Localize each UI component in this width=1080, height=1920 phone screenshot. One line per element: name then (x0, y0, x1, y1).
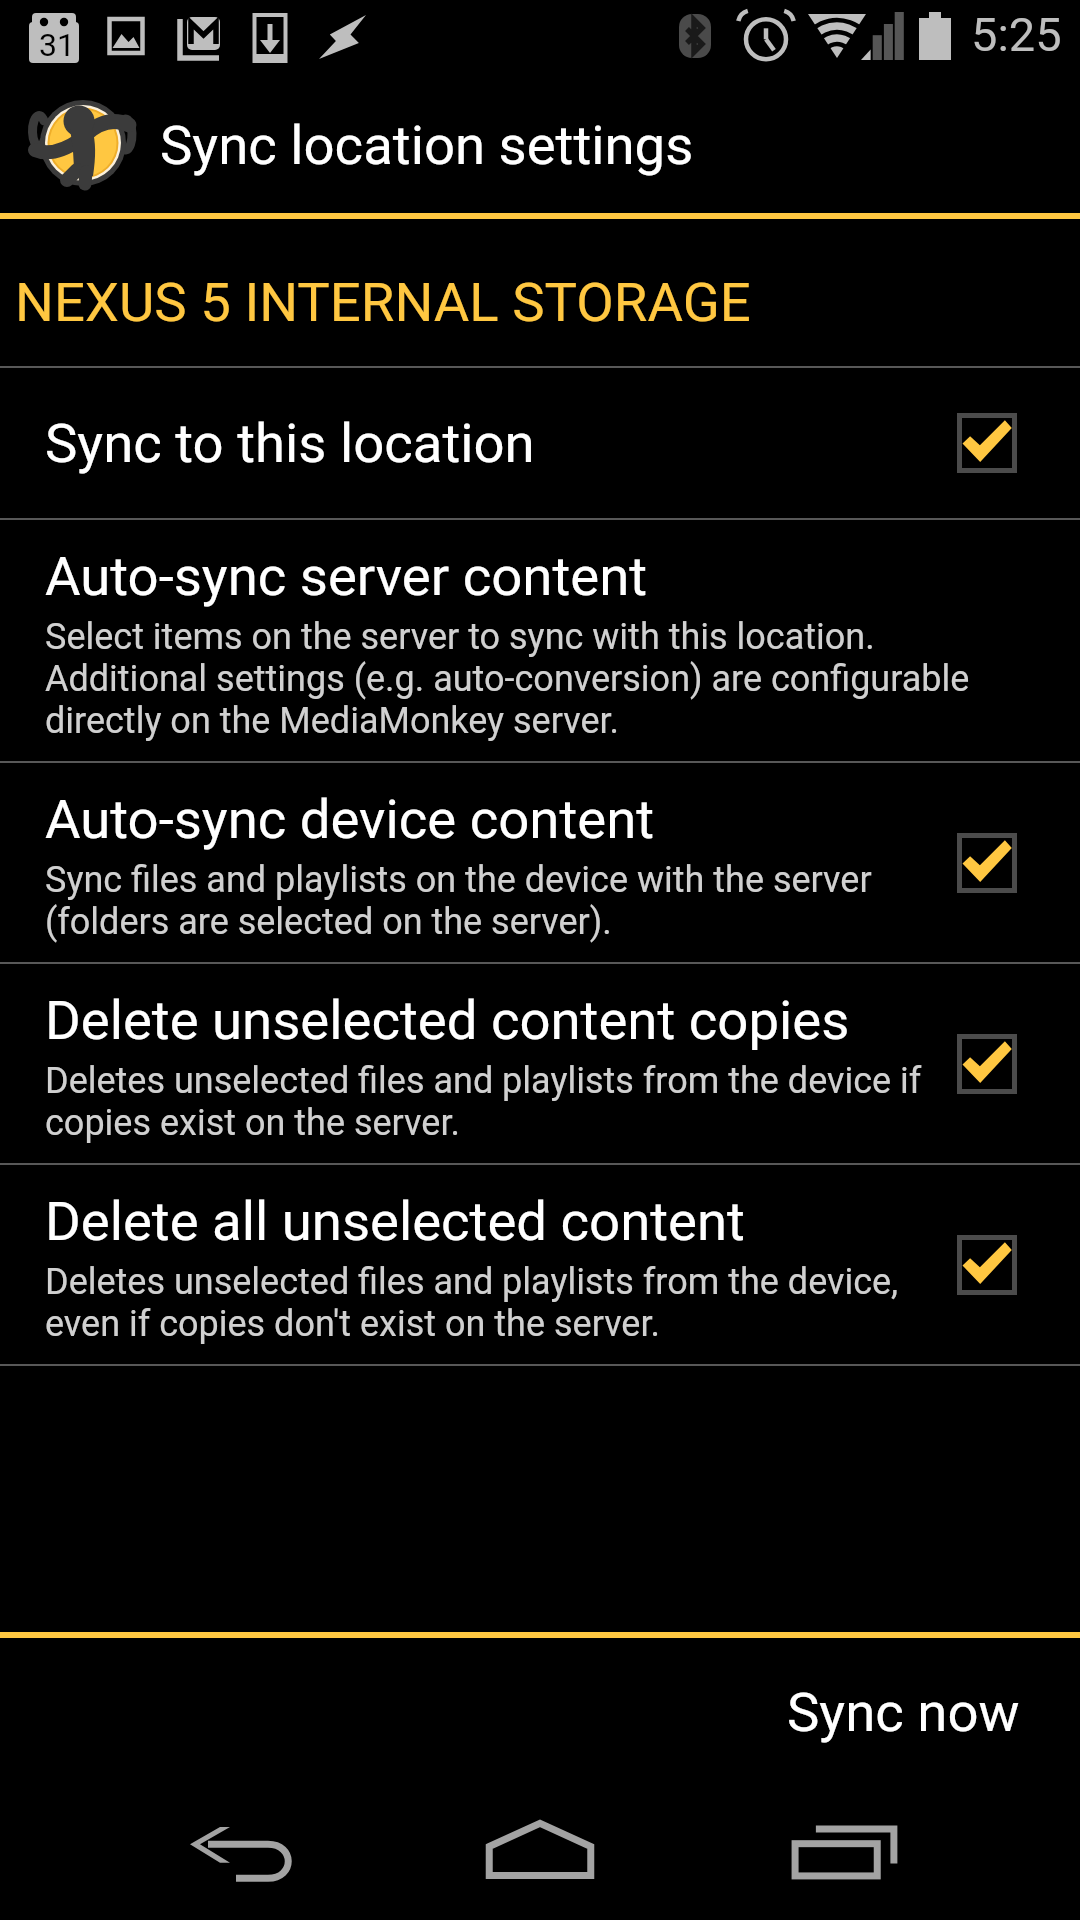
button[interactable]: Toggle Auto-sync device content (957, 833, 1017, 893)
staticText: NEXUS 5 INTERNAL STORAGE (15, 270, 751, 334)
staticText: Delete unselected content copies (45, 988, 850, 1052)
button[interactable]: Toggle Delete unselected content copies (957, 1034, 1017, 1094)
button[interactable]: Delete all unselected content (0, 1165, 1080, 1364)
staticText: 31 (39, 26, 75, 64)
staticText: 5:25 (971, 7, 1062, 62)
staticText: Sync location settings (160, 113, 694, 177)
button[interactable]: Toggle Sync to this location (957, 413, 1017, 473)
staticText: Delete all unselected content (45, 1189, 745, 1253)
button[interactable]: Back (150, 1778, 330, 1920)
staticText: Deletes unselected files and playlists f… (45, 1060, 922, 1144)
button[interactable]: Sync to this location (0, 368, 1080, 518)
staticText: Sync to this location (45, 411, 535, 475)
staticText: Deletes unselected files and playlists f… (45, 1261, 899, 1345)
button[interactable]: Toggle Delete all unselected content (957, 1235, 1017, 1295)
staticText: Select items on the server to sync with … (45, 616, 970, 742)
button[interactable]: Auto-sync server content (0, 520, 1080, 761)
button[interactable]: Sync now (749, 1638, 1080, 1764)
staticText: Auto-sync server content (45, 544, 648, 608)
button[interactable]: Recent apps (755, 1778, 935, 1920)
staticText: Auto-sync device content (45, 787, 655, 851)
button[interactable]: Auto-sync device content (0, 763, 1080, 962)
staticText: Sync now (787, 1680, 1020, 1744)
button[interactable]: Home (450, 1778, 630, 1920)
staticText: Sync files and playlists on the device w… (45, 859, 872, 943)
button[interactable]: Delete unselected content copies (0, 964, 1080, 1163)
